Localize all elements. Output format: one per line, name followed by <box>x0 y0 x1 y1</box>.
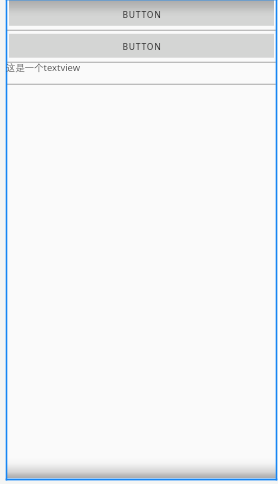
staticText: BUTTON <box>122 41 162 53</box>
staticText: 这是一个textview <box>6 61 81 74</box>
staticText: BUTTON <box>122 9 162 21</box>
button[interactable]: BUTTON <box>9 35 274 59</box>
button[interactable]: 这是一个textview <box>6 61 274 83</box>
button[interactable]: BUTTON <box>9 3 274 27</box>
